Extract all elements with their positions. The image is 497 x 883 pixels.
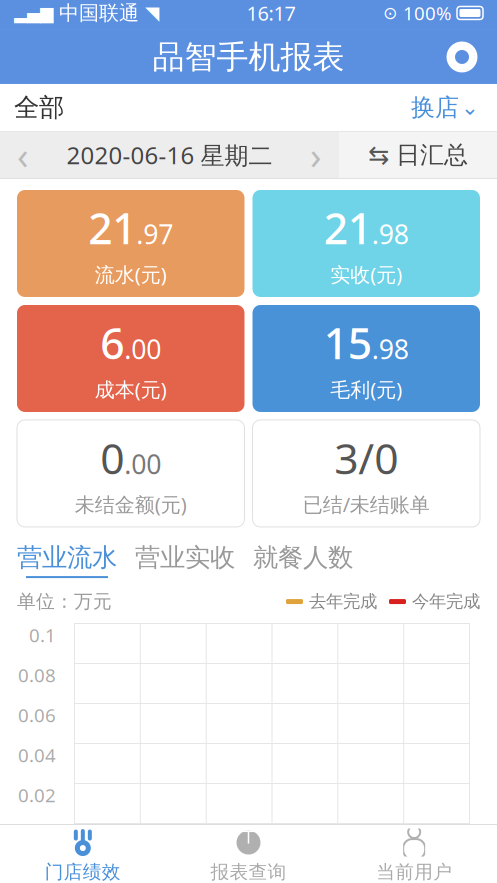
staticText: 2020-06-16 星期二 (66, 139, 272, 171)
button[interactable]: 前一天 (0, 132, 46, 178)
staticText: ⌄ (461, 95, 479, 120)
button[interactable]: 营业实收 (135, 542, 235, 578)
staticText: 当前用户 (376, 861, 452, 883)
button[interactable]: 营业流水 (17, 542, 117, 578)
staticText: 中国联通 (59, 1, 139, 25)
staticText: 3/0 (334, 429, 398, 486)
staticText: 0 (100, 429, 124, 486)
button[interactable]: ⇆ (339, 132, 497, 178)
staticText: .98 (372, 331, 409, 367)
staticText: 16:17 (246, 0, 295, 26)
staticText: 报表查询 (210, 861, 286, 883)
staticText: 21 (88, 199, 136, 256)
button[interactable]: 报表查询 (166, 825, 331, 883)
button[interactable]: 0 (17, 420, 244, 527)
staticText: 品智手机报表 (152, 37, 344, 77)
staticText: 流水(元) (95, 261, 167, 288)
button[interactable]: 后一天 (293, 132, 339, 178)
button[interactable]: 21 (17, 190, 244, 297)
staticText: 换店 (411, 93, 459, 122)
staticText: 单位：万元 (17, 590, 112, 613)
staticText: 营业实收 (135, 542, 235, 573)
staticText: 6 (100, 314, 124, 371)
staticText: .00 (124, 446, 161, 482)
staticText: ◥ (145, 2, 159, 24)
staticText: 0.08 (18, 663, 56, 687)
staticText: 去年完成 (309, 591, 377, 612)
staticText: ⇆ (368, 141, 389, 169)
staticText: ‹ (17, 130, 29, 180)
button[interactable]: 设置 (435, 30, 489, 84)
staticText: ▂▄▆ (14, 3, 53, 23)
button[interactable]: 当前用户 (331, 825, 497, 883)
staticText: 已结/未结账单 (303, 491, 430, 518)
staticText: 15 (324, 314, 372, 371)
button[interactable]: 6 (17, 305, 244, 412)
staticText: 全部 (14, 92, 64, 123)
staticText: 毛利(元) (330, 376, 402, 403)
staticText: 21 (324, 199, 372, 256)
button[interactable]: 3/0 (252, 420, 480, 527)
button[interactable]: 换店 (407, 87, 483, 128)
staticText: .98 (372, 216, 409, 252)
staticText: 日汇总 (396, 140, 468, 170)
staticText: 今年完成 (412, 591, 480, 612)
button[interactable]: 门店绩效 (0, 825, 166, 883)
staticText: 0.06 (18, 703, 56, 727)
staticText: .00 (124, 331, 161, 367)
staticText: 门店绩效 (45, 861, 121, 883)
staticText: 营业流水 (17, 542, 117, 573)
staticText: .97 (136, 216, 173, 252)
staticText: 0.1 (29, 623, 56, 647)
button[interactable]: 15 (252, 305, 480, 412)
staticText: 0.04 (18, 743, 56, 767)
staticText: ⊙ (383, 3, 398, 23)
staticText: 就餐人数 (253, 542, 353, 573)
button[interactable]: 就餐人数 (253, 542, 353, 578)
staticText: › (310, 130, 322, 180)
staticText: 未结金额(元) (75, 491, 187, 518)
staticText: 成本(元) (95, 376, 167, 403)
button[interactable]: 21 (252, 190, 480, 297)
staticText: 0.02 (18, 783, 56, 807)
staticText: 实收(元) (330, 261, 402, 288)
staticText: 100% (403, 1, 452, 25)
